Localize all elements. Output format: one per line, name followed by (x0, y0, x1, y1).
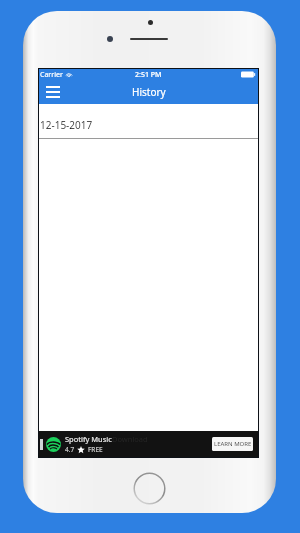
staticText: LEARN MORE (214, 440, 252, 448)
button[interactable]: LEARN MORE (212, 437, 253, 451)
staticText: Carrier (40, 70, 63, 80)
button[interactable]: Spotify Music (39, 431, 258, 457)
staticText: 4.7 (65, 445, 75, 454)
staticText: History (132, 85, 166, 99)
button[interactable]: 12-15-2017 (39, 104, 258, 138)
staticText: Spotify Music (65, 434, 112, 444)
button[interactable]: Menu (42, 81, 64, 103)
staticText: Download (112, 434, 148, 444)
staticText: 12-15-2017 (40, 118, 93, 132)
staticText: FREE (88, 445, 103, 454)
staticText: 2:51 PM (135, 70, 162, 80)
